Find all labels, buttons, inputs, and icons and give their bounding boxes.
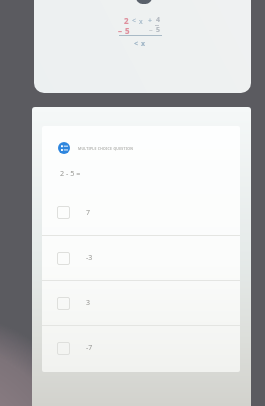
staticText: 3 — [86, 298, 91, 308]
button[interactable]: 3 — [42, 281, 240, 325]
staticText: + — [148, 16, 153, 26]
staticText: 5 — [125, 25, 130, 36]
staticText: 2 - 5 = — [60, 168, 81, 178]
staticText: MULTIPLE CHOICE QUESTION — [78, 146, 134, 151]
staticText: 5 — [156, 25, 161, 35]
staticText: – — [149, 25, 153, 35]
staticText: 7 — [86, 208, 91, 218]
staticText: – — [118, 25, 122, 36]
staticText: 2 — [124, 15, 129, 26]
staticText: < — [132, 16, 137, 26]
button[interactable]: -3 — [42, 236, 240, 280]
other: Question type — [58, 142, 70, 154]
staticText: 4 — [156, 15, 161, 25]
staticText: x — [141, 39, 146, 49]
staticText: < — [134, 39, 139, 49]
staticText: x — [139, 17, 143, 27]
staticText: -3 — [86, 253, 93, 263]
staticText: -7 — [86, 343, 93, 353]
